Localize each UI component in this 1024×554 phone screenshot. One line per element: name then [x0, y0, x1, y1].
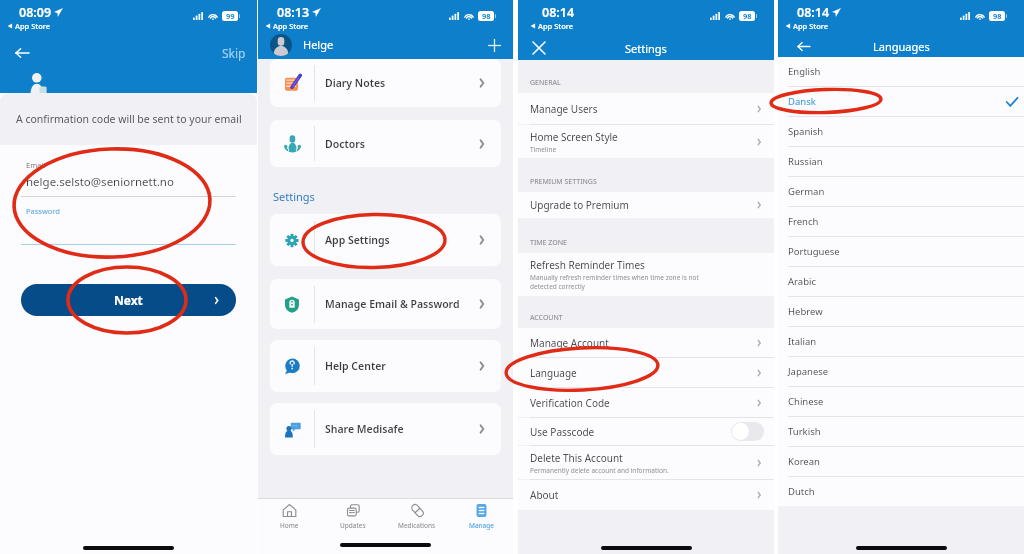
staticText: 08:09	[19, 4, 52, 21]
staticText: Delete This Account	[530, 451, 623, 465]
staticText: Manage Email & Password	[325, 297, 460, 311]
button[interactable]: German	[778, 177, 1024, 206]
staticText: Doctors	[325, 137, 365, 151]
staticText: Next	[114, 292, 143, 308]
staticText: Password	[26, 206, 60, 216]
staticText: Korean	[788, 455, 1018, 468]
button[interactable]: English	[778, 57, 1024, 86]
staticText: Italian	[788, 335, 1018, 348]
button[interactable]: Russian	[778, 147, 1024, 176]
staticText: Verification Code	[530, 396, 610, 410]
button[interactable]: Delete This Account	[518, 446, 774, 479]
button[interactable]: Dutch	[778, 477, 1024, 506]
button[interactable]: Add	[484, 35, 504, 55]
button[interactable]: Arabic	[778, 267, 1024, 296]
staticText: helge.selsto@seniornett.no	[26, 174, 174, 190]
staticText: TIME ZONE	[530, 238, 567, 248]
staticText: Manage Account	[530, 336, 609, 350]
staticText: Home	[280, 521, 299, 530]
staticText: Chinese	[788, 395, 1018, 408]
staticText: Upgrade to Premium	[530, 198, 629, 212]
staticText: PREMIUM SETTINGS	[530, 177, 597, 187]
staticText: French	[788, 215, 1018, 228]
staticText: ACCOUNT	[530, 313, 563, 323]
button[interactable]: Updates	[321, 499, 385, 532]
staticText: Helge	[303, 37, 334, 52]
button[interactable]: Manage Email & Password	[270, 279, 501, 329]
staticText: Languages	[873, 39, 930, 54]
staticText: Manage	[469, 521, 494, 530]
staticText: 08:13	[277, 4, 310, 21]
staticText: Email	[26, 160, 46, 170]
staticText: Language	[530, 366, 577, 380]
staticText: Home Screen Style	[530, 130, 618, 144]
staticText: Arabic	[788, 275, 1018, 288]
staticText: Updates	[340, 521, 366, 530]
button[interactable]: Spanish	[778, 117, 1024, 146]
staticText: 98	[743, 11, 752, 21]
button[interactable]: Chinese	[778, 387, 1024, 416]
staticText: Medications	[398, 521, 436, 530]
staticText: Refresh Reminder Times	[530, 258, 645, 272]
button[interactable]: Refresh Reminder Times	[518, 253, 774, 296]
button[interactable]: Upgrade to Premium	[518, 192, 774, 218]
staticText: 98	[993, 11, 1002, 21]
staticText: Timeline	[530, 145, 557, 154]
button[interactable]: Home	[258, 499, 321, 532]
staticText: Help Center	[325, 359, 386, 373]
staticText: App Store	[15, 21, 51, 31]
button[interactable]: Manage	[449, 499, 513, 532]
staticText: Manage Users	[530, 102, 598, 116]
button[interactable]: Manage Account	[518, 328, 774, 357]
staticText: Japanese	[788, 365, 1018, 378]
staticText: App Store	[273, 21, 309, 31]
button[interactable]: Diary Notes	[270, 59, 501, 107]
staticText: App Store	[538, 21, 574, 31]
staticText: Settings	[625, 41, 667, 56]
button[interactable]: Close	[528, 37, 550, 59]
staticText: 08:14	[797, 4, 830, 21]
button[interactable]: Help Center	[270, 340, 501, 392]
button[interactable]: Hebrew	[778, 297, 1024, 326]
staticText: Share Medisafe	[325, 422, 404, 436]
button[interactable]: Korean	[778, 447, 1024, 476]
button[interactable]: About	[518, 480, 774, 510]
staticText: Skip	[222, 45, 246, 61]
button[interactable]: Dansk	[778, 87, 1024, 116]
button[interactable]: Japanese	[778, 357, 1024, 386]
staticText: App Store	[793, 21, 829, 31]
button[interactable]: Italian	[778, 327, 1024, 356]
staticText: Russian	[788, 155, 1018, 168]
button[interactable]: French	[778, 207, 1024, 236]
button[interactable]: Use Passcode	[518, 418, 774, 445]
staticText: 99	[226, 11, 235, 21]
button[interactable]: Language	[518, 358, 774, 387]
button[interactable]: Manage Users	[518, 93, 774, 124]
button[interactable]: Home Screen Style	[518, 125, 774, 158]
staticText: About	[530, 488, 559, 502]
button[interactable]: Back	[792, 36, 814, 57]
button[interactable]: Portuguese	[778, 237, 1024, 266]
button[interactable]: Back	[10, 41, 34, 65]
button[interactable]: App Settings	[270, 214, 501, 266]
staticText: Spanish	[788, 125, 1018, 138]
button[interactable]: Turkish	[778, 417, 1024, 446]
staticText: GENERAL	[530, 78, 561, 88]
staticText: English	[788, 65, 1018, 78]
staticText: Manually refresh reminder times when tim…	[530, 273, 699, 291]
staticText: German	[788, 185, 1018, 198]
staticText: 08:14	[542, 4, 575, 21]
button[interactable]: Skip	[218, 41, 250, 65]
staticText: Settings	[273, 189, 315, 204]
button[interactable]: Next	[21, 284, 236, 316]
button[interactable]: Medications	[385, 499, 449, 532]
staticText: A confirmation code will be sent to your…	[16, 112, 242, 126]
staticText: Diary Notes	[325, 76, 386, 90]
staticText: Dansk	[788, 95, 1006, 108]
staticText: Portuguese	[788, 245, 1018, 258]
button[interactable]: Doctors	[270, 120, 501, 167]
staticText: Turkish	[788, 425, 1018, 438]
staticText: 98	[482, 11, 491, 21]
button[interactable]: Share Medisafe	[270, 403, 501, 455]
button[interactable]: Verification Code	[518, 388, 774, 417]
